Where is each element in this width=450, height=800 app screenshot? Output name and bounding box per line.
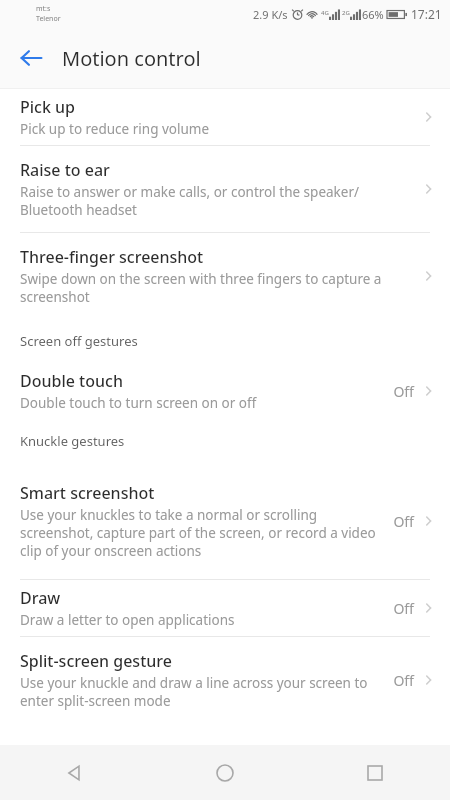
staticText: 4G [321,9,329,17]
button[interactable]: Back [0,745,150,800]
button[interactable]: Three-finger screenshot [0,233,450,319]
button[interactable]: Pick up [0,89,450,145]
staticText: Knuckle gestures [20,432,125,450]
staticText: mt:s [36,4,51,14]
staticText: Split-screen gesture [20,650,172,672]
button[interactable]: Home [150,745,300,800]
staticText: Use your knuckles to take a normal or sc… [20,506,393,560]
staticText: 2G [342,9,350,17]
staticText: Smart screenshot [20,482,155,504]
staticText: 2.9 K/s [253,7,288,22]
staticText: Off [393,512,414,531]
staticText: Off [393,382,414,401]
staticText: Off [393,671,414,690]
staticText: Use your knuckle and draw a line across … [20,674,393,710]
staticText: Three-finger screenshot [20,246,204,268]
button[interactable]: Raise to ear [0,146,450,232]
staticText: Swipe down on the screen with three fing… [20,270,420,306]
staticText: Raise to answer or make calls, or contro… [20,183,420,219]
button[interactable]: Draw [0,580,450,636]
button[interactable]: Recent apps [300,745,450,800]
staticText: Double touch [20,370,123,392]
staticText: Pick up [20,96,75,118]
staticText: Pick up to reduce ring volume [20,120,210,138]
staticText: 66% [362,7,384,22]
staticText: Off [393,599,414,618]
staticText: Double touch to turn screen on or off [20,394,257,412]
staticText: Draw [20,587,61,609]
button[interactable]: Double touch [0,363,450,419]
staticText: Telenor [36,14,61,24]
staticText: Motion control [62,45,201,72]
staticText: 17:21 [411,6,442,22]
staticText: Draw a letter to open applications [20,611,235,629]
button[interactable]: Split-screen gesture [0,637,450,723]
staticText: Raise to ear [20,159,110,181]
staticText: Screen off gestures [20,332,138,350]
button[interactable]: Back [0,28,62,88]
button[interactable]: Smart screenshot [0,463,450,579]
